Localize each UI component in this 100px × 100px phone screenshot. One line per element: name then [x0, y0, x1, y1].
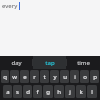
button[interactable]: h: [54, 85, 64, 98]
staticText: k: [79, 88, 83, 96]
button[interactable]: q: [1, 70, 9, 83]
button[interactable]: r: [30, 70, 39, 83]
staticText: q: [3, 73, 7, 81]
staticText: d: [26, 88, 30, 96]
button[interactable]: day: [0, 56, 32, 69]
staticText: h: [57, 88, 61, 96]
button[interactable]: o: [80, 70, 89, 83]
button[interactable]: s: [13, 85, 22, 98]
staticText: u: [63, 73, 67, 81]
button[interactable]: g: [43, 85, 53, 98]
staticText: s: [16, 88, 19, 96]
staticText: j: [69, 88, 71, 96]
button[interactable]: d: [23, 85, 32, 98]
button[interactable]: i: [70, 70, 79, 83]
button[interactable]: k: [76, 85, 86, 98]
button[interactable]: t: [40, 70, 49, 83]
staticText: day: [11, 59, 22, 67]
staticText: p: [93, 73, 97, 81]
staticText: every: [2, 2, 18, 10]
button[interactable]: f: [33, 85, 42, 98]
button[interactable]: e: [20, 70, 29, 83]
button[interactable]: time: [67, 56, 100, 69]
staticText: o: [83, 73, 87, 81]
staticText: e: [23, 73, 27, 81]
button[interactable]: a: [3, 85, 12, 98]
button[interactable]: every: [2, 2, 20, 10]
button[interactable]: p: [90, 70, 99, 83]
staticText: y: [53, 73, 57, 81]
staticText: a: [6, 88, 10, 96]
staticText: f: [36, 88, 39, 96]
staticText: l: [91, 88, 93, 96]
button[interactable]: w: [10, 70, 19, 83]
button[interactable]: tap: [33, 56, 66, 69]
staticText: tap: [45, 59, 55, 67]
staticText: w: [12, 73, 17, 81]
staticText: r: [33, 73, 36, 81]
staticText: time: [77, 59, 90, 67]
staticText: i: [74, 73, 76, 81]
staticText: t: [43, 73, 46, 81]
button[interactable]: l: [87, 85, 97, 98]
staticText: g: [46, 88, 50, 96]
button[interactable]: y: [50, 70, 59, 83]
button[interactable]: j: [65, 85, 75, 98]
button[interactable]: u: [60, 70, 69, 83]
